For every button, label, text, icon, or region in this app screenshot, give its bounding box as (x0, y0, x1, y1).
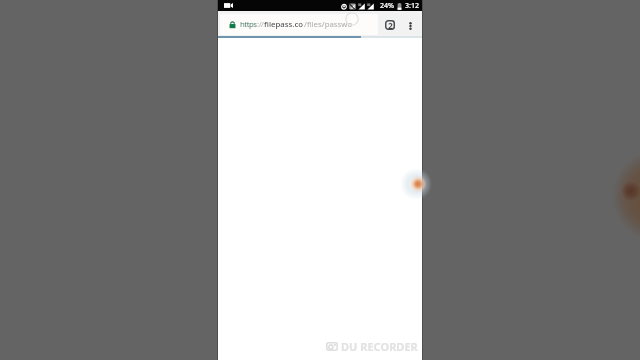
staticText: :// (257, 19, 264, 30)
staticText: 2 (388, 20, 393, 30)
staticText: 3:12 (405, 1, 419, 11)
staticText: https (240, 19, 257, 30)
staticText: /files/passwo (304, 19, 353, 30)
staticText: 24% (380, 1, 394, 11)
button[interactable]: https (220, 14, 378, 35)
button[interactable]: More options (402, 16, 419, 33)
button[interactable]: Tabs, 2 open (381, 16, 398, 33)
staticText: DU RECORDER (341, 339, 418, 354)
staticText: filepass.co (264, 19, 304, 30)
